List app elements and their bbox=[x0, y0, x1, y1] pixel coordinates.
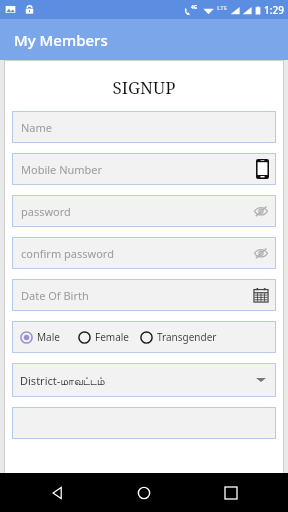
button[interactable]: District-மாவட்டம் bbox=[12, 363, 276, 397]
button[interactable]: Mobile Number bbox=[12, 153, 276, 185]
staticText: Male bbox=[37, 330, 60, 344]
button[interactable]: Home bbox=[129, 478, 159, 508]
button[interactable] bbox=[12, 407, 276, 439]
staticText: password bbox=[21, 204, 71, 219]
staticText: 4G bbox=[191, 4, 198, 11]
staticText: Date Of Birth bbox=[21, 288, 89, 303]
other: Show password bbox=[253, 245, 269, 261]
button[interactable]: Recents bbox=[216, 478, 246, 508]
button[interactable]: Male bbox=[20, 330, 60, 344]
other: Pick date bbox=[253, 287, 269, 303]
button[interactable]: Back bbox=[42, 478, 72, 508]
button[interactable]: password bbox=[12, 195, 276, 227]
staticText: District-மாவட்டம் bbox=[20, 373, 105, 388]
staticText: Female bbox=[95, 330, 130, 344]
button[interactable]: confirm password bbox=[12, 237, 276, 269]
other: Show password bbox=[253, 203, 269, 219]
staticText: My Members bbox=[14, 30, 108, 50]
staticText: Name bbox=[21, 120, 53, 135]
button[interactable]: Female bbox=[78, 330, 130, 344]
staticText: confirm password bbox=[21, 246, 114, 261]
button[interactable]: Transgender bbox=[140, 330, 217, 344]
staticText: LTE bbox=[217, 4, 228, 12]
button[interactable]: Name bbox=[12, 111, 276, 143]
staticText: SIGNUP bbox=[12, 76, 276, 99]
staticText: Transgender bbox=[157, 330, 217, 344]
other: Mobile bbox=[256, 159, 269, 179]
staticText: 1:29 bbox=[264, 3, 284, 17]
staticText: Mobile Number bbox=[21, 162, 103, 177]
button[interactable]: Date Of Birth bbox=[12, 279, 276, 311]
